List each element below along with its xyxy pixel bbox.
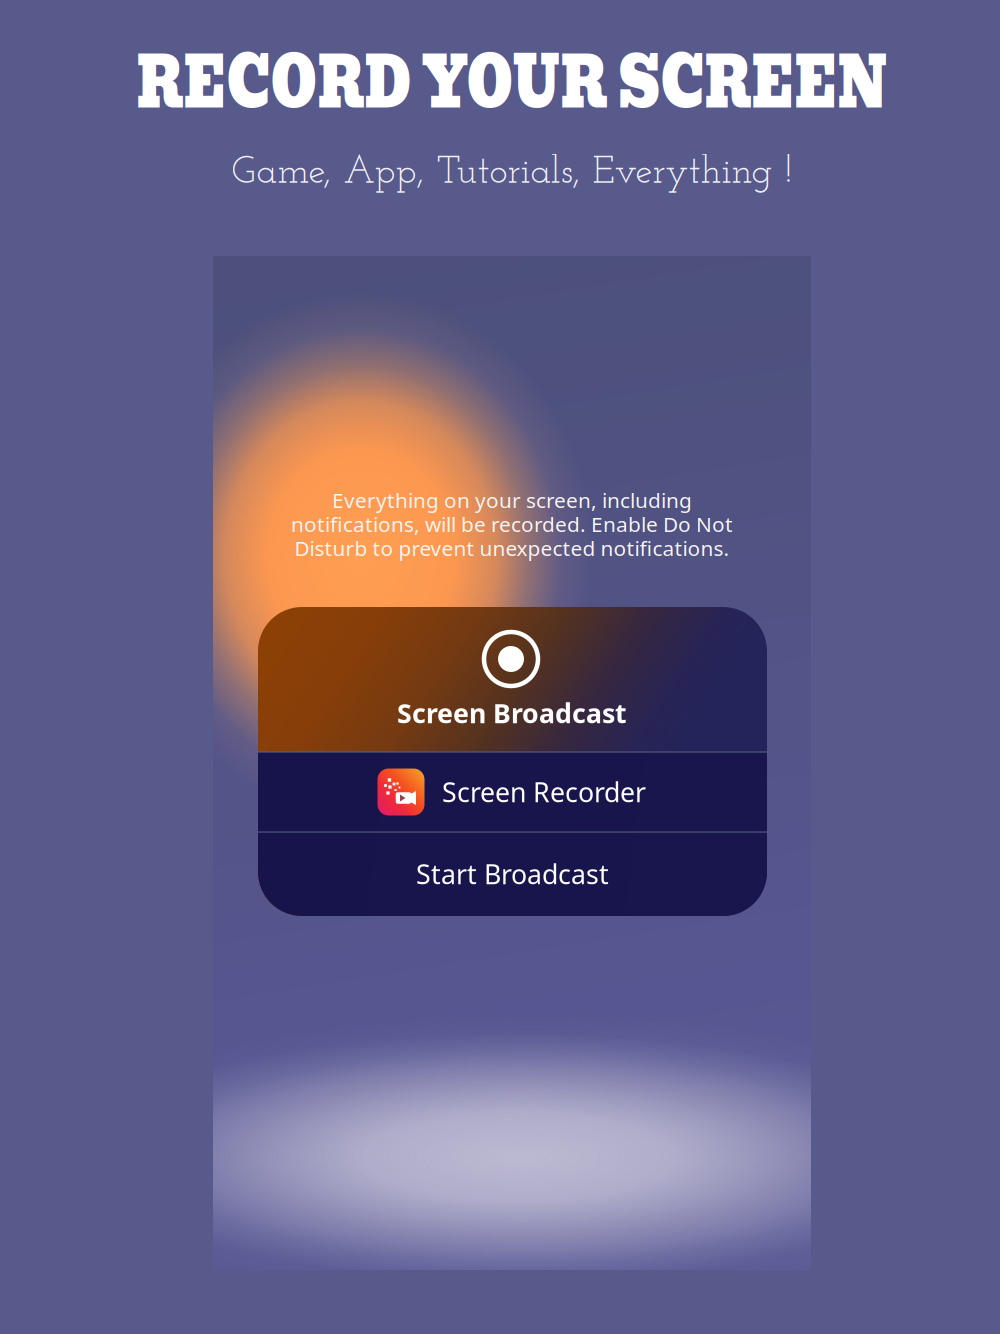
button[interactable]: Screen Recorder [258, 752, 767, 832]
staticText: Start Broadcast [416, 856, 609, 892]
button[interactable]: Start Broadcast [258, 832, 767, 916]
staticText: notifications, will be recorded. Enable … [291, 510, 733, 538]
staticText: Game, App, Tutorials, Everything ! [231, 154, 792, 192]
staticText: Screen Recorder [442, 774, 646, 810]
staticText: Disturb to prevent unexpected notificati… [294, 534, 729, 562]
staticText: RECORD YOUR SCREEN [136, 39, 887, 127]
staticText: Everything on your screen, including [332, 486, 692, 514]
staticText: Screen Broadcast [397, 695, 627, 731]
